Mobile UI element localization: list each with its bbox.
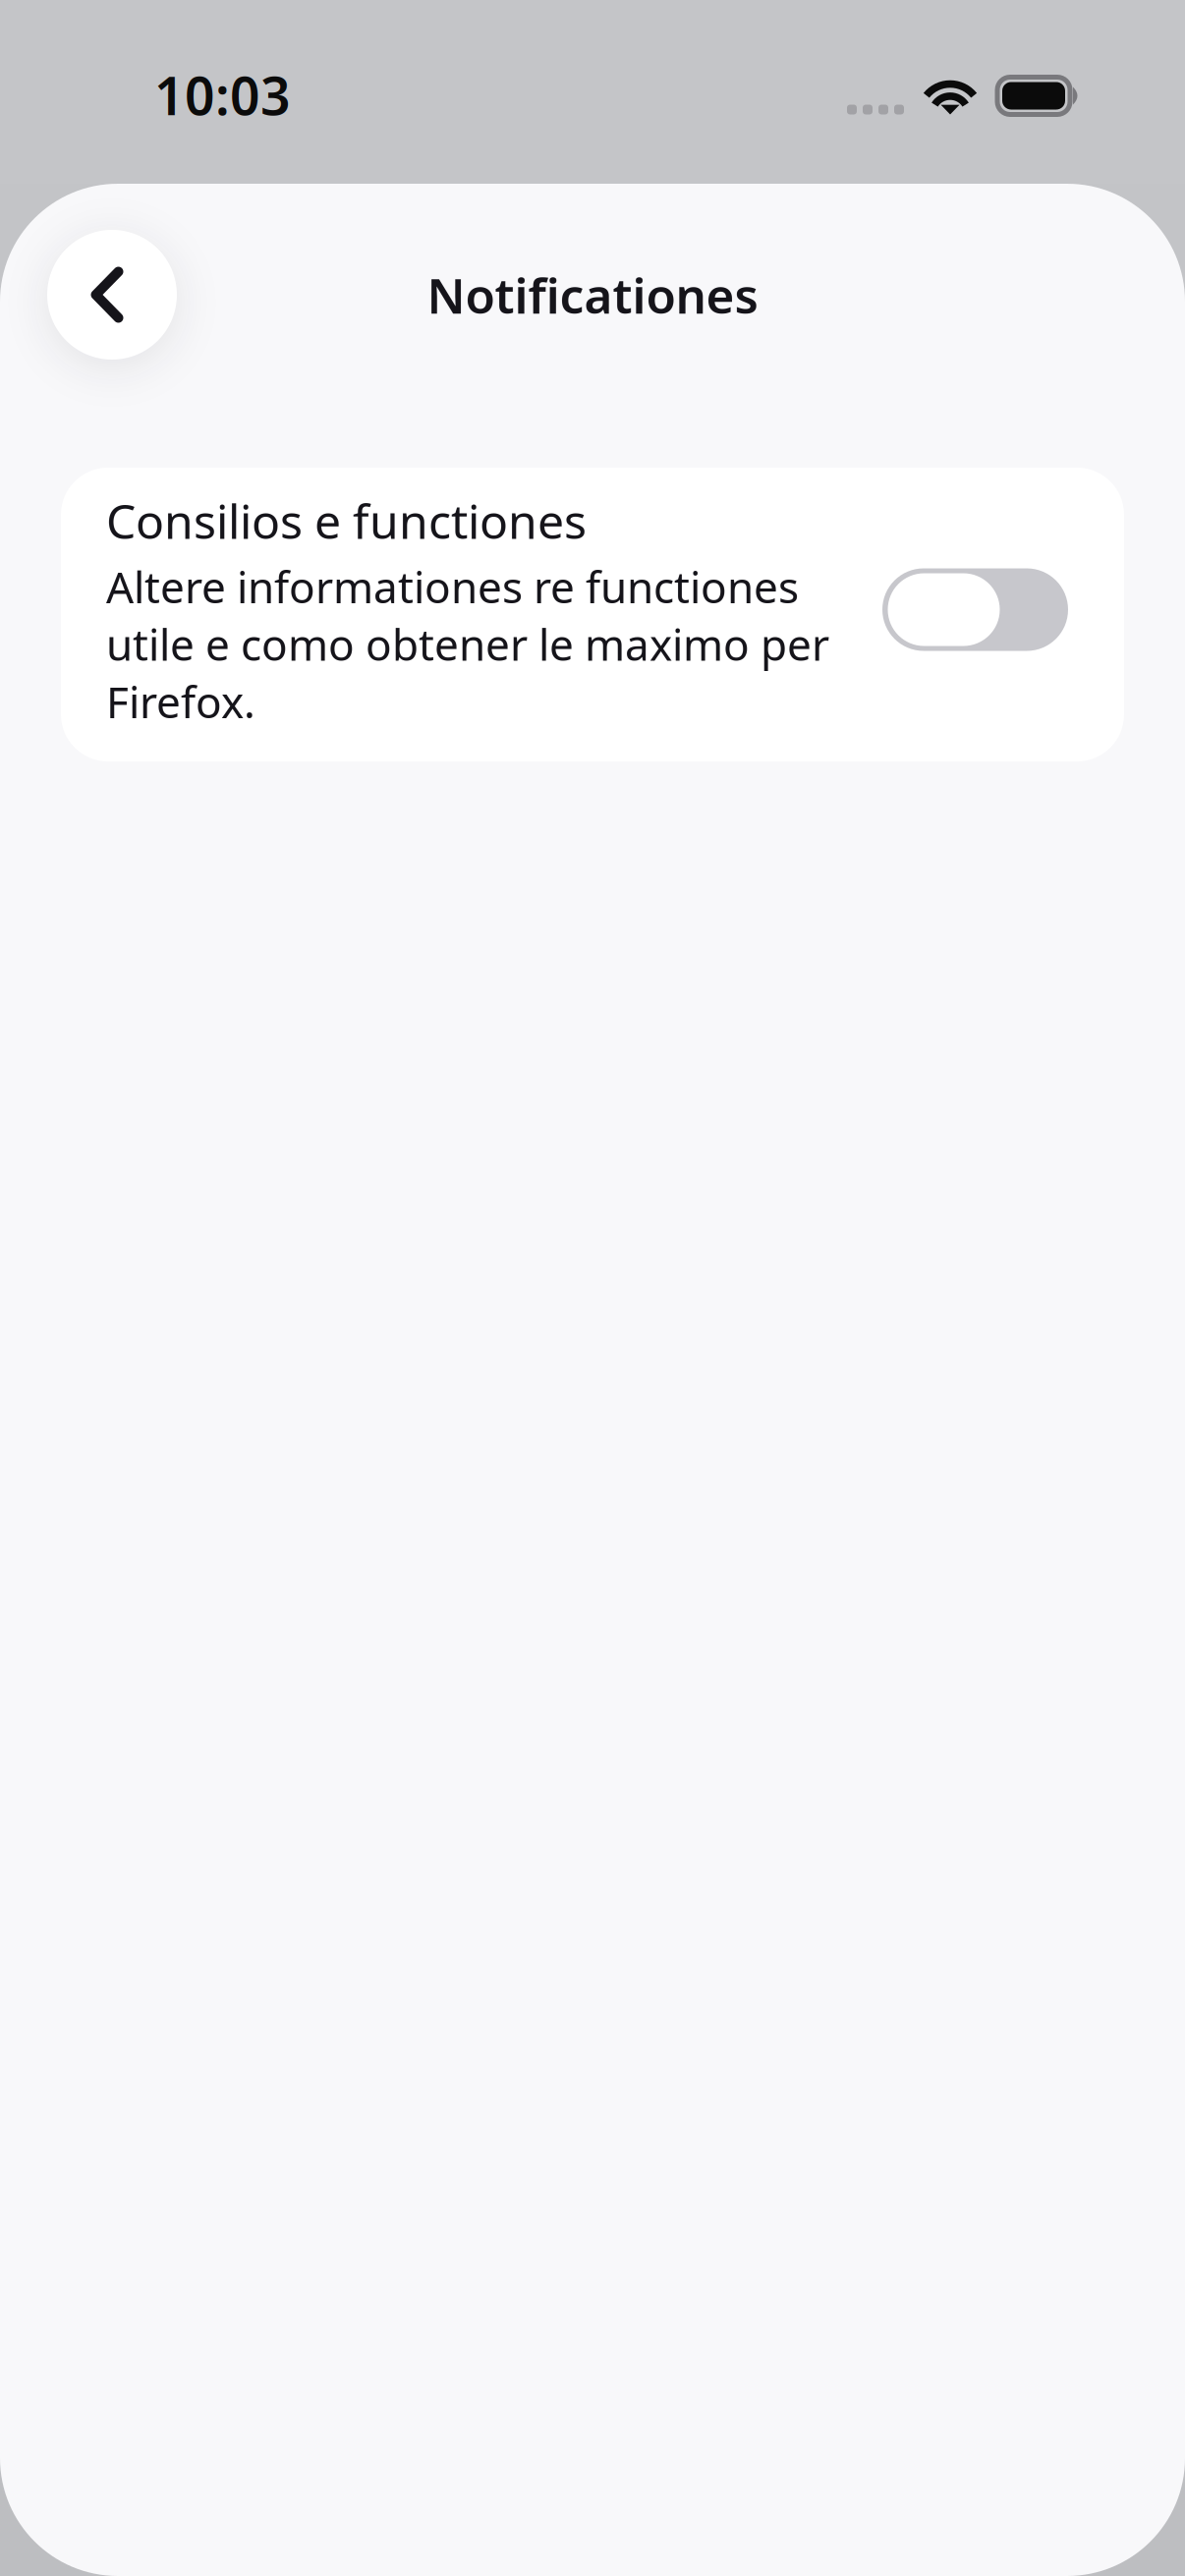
staticText: Altere informationes re functiones utile…	[106, 558, 829, 730]
staticText: Notificationes	[427, 263, 758, 327]
staticText: Consilios e functiones	[106, 489, 587, 552]
button[interactable]: Back	[47, 230, 177, 360]
staticText: 10:03	[154, 60, 291, 130]
button[interactable]: Consilios e functiones	[882, 568, 1068, 651]
